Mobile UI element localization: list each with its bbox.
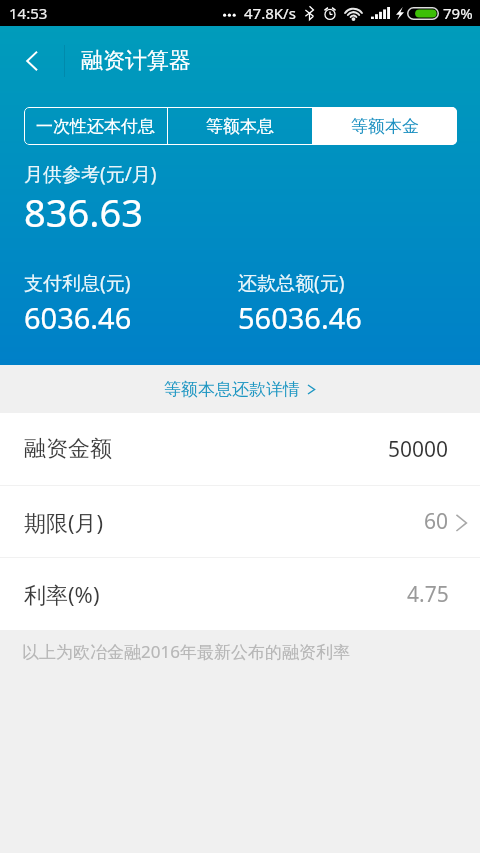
staticText: 4.75	[407, 580, 449, 609]
staticText: 等额本息	[206, 116, 274, 137]
button[interactable]: 利率(%)	[0, 558, 480, 630]
staticText: 47.8K/s	[244, 3, 296, 23]
staticText: 融资金额	[24, 435, 112, 463]
staticText: 等额本金	[351, 116, 419, 137]
staticText: 月供参考(元/月)	[24, 161, 157, 187]
staticText: 支付利息(元)	[24, 270, 131, 296]
staticText: 一次性还本付息	[36, 116, 155, 137]
button[interactable]: 等额本息	[168, 107, 312, 145]
button[interactable]: 等额本金	[313, 107, 457, 145]
staticText: 期限(月)	[24, 507, 104, 537]
staticText: 14:53	[9, 3, 48, 23]
button[interactable]: Back	[0, 26, 64, 95]
staticText: 56036.46	[238, 298, 362, 337]
button[interactable]: 融资金额	[0, 413, 480, 485]
staticText: 以上为欧冶金融2016年最新公布的融资利率	[22, 640, 350, 663]
staticText: 50000	[388, 435, 449, 464]
staticText: 融资计算器	[81, 47, 191, 75]
staticText: 60	[424, 507, 449, 536]
button[interactable]: 期限(月)	[0, 486, 480, 557]
staticText: 等额本息还款详情	[164, 379, 300, 400]
button[interactable]: 等额本息还款详情	[0, 365, 480, 413]
staticText: 还款总额(元)	[238, 270, 345, 296]
button[interactable]: 一次性还本付息	[24, 107, 167, 145]
staticText: 836.63	[24, 186, 143, 238]
staticText: 利率(%)	[24, 579, 100, 609]
staticText: 6036.46	[24, 298, 132, 337]
staticText: 79%	[443, 3, 473, 23]
